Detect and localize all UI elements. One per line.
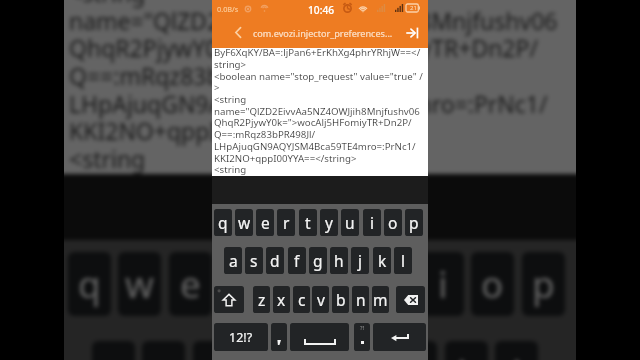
button[interactable]: q bbox=[68, 252, 111, 316]
button[interactable]: c bbox=[293, 286, 310, 313]
staticText: t bbox=[305, 212, 311, 233]
staticText: <string bbox=[69, 143, 146, 174]
button[interactable]: o bbox=[384, 209, 402, 236]
button[interactable]: y bbox=[320, 252, 363, 316]
button[interactable]: Shift bbox=[214, 286, 244, 313]
staticText: 0.0B/s bbox=[217, 4, 239, 14]
staticText: i bbox=[370, 212, 374, 233]
staticText: l bbox=[401, 250, 405, 271]
button[interactable]: l bbox=[495, 341, 538, 360]
staticText: x bbox=[277, 289, 286, 310]
staticText: k bbox=[457, 348, 477, 360]
button[interactable]: k bbox=[373, 247, 391, 274]
staticText: l bbox=[512, 348, 522, 360]
button[interactable]: Space bbox=[290, 323, 349, 351]
staticText: LHpAjuqGN9AQYJSM4Bca59TE4mro=:PrNc1/ bbox=[214, 140, 416, 153]
staticText: f bbox=[294, 250, 300, 271]
button[interactable]: p bbox=[522, 252, 565, 316]
button[interactable]: t bbox=[270, 252, 313, 316]
staticText: e bbox=[261, 212, 270, 233]
staticText: t bbox=[285, 259, 299, 309]
staticText: c bbox=[298, 289, 306, 310]
button[interactable]: Comma bbox=[271, 323, 287, 351]
button[interactable]: d bbox=[193, 341, 236, 360]
staticText: m bbox=[373, 289, 388, 310]
staticText: com.evozi.injector_preferences... bbox=[253, 27, 393, 39]
button[interactable]: w bbox=[118, 252, 161, 316]
staticText: d bbox=[270, 250, 280, 271]
button[interactable]: r bbox=[277, 209, 295, 236]
button[interactable]: u bbox=[341, 209, 359, 236]
staticText: Q==:mRqz83bPR498Jl/ bbox=[69, 60, 309, 91]
button[interactable]: Save bbox=[398, 17, 426, 48]
button[interactable]: x bbox=[273, 286, 290, 313]
staticText: ByF6XqKY/BA=:ljPan6+ErKhXg4phrYRhjW==</ bbox=[214, 48, 421, 59]
button[interactable]: n bbox=[352, 286, 369, 313]
staticText: i bbox=[438, 259, 448, 309]
staticText: <string bbox=[214, 163, 247, 176]
button[interactable]: t bbox=[299, 209, 317, 236]
button[interactable]: Back bbox=[222, 17, 254, 48]
button[interactable]: w bbox=[235, 209, 253, 236]
staticText: > bbox=[214, 81, 220, 94]
button[interactable]: z bbox=[253, 286, 270, 313]
staticText: d bbox=[203, 348, 226, 360]
staticText: p bbox=[532, 259, 555, 309]
staticText: 21 bbox=[410, 4, 417, 12]
button[interactable]: a bbox=[224, 247, 242, 274]
staticText: b bbox=[336, 289, 346, 310]
staticText: h bbox=[334, 250, 344, 271]
button[interactable]: com.evozi.injector_preferences... bbox=[253, 17, 398, 48]
staticText: g bbox=[313, 250, 323, 271]
button[interactable]: m bbox=[372, 286, 389, 313]
button[interactable]: l bbox=[394, 247, 412, 274]
staticText: q bbox=[78, 259, 101, 309]
button[interactable]: r bbox=[219, 252, 262, 316]
staticText: string> bbox=[214, 58, 247, 71]
button[interactable]: Delete bbox=[396, 286, 425, 313]
button[interactable]: j bbox=[351, 247, 369, 274]
button[interactable]: e bbox=[256, 209, 274, 236]
button[interactable]: q bbox=[214, 209, 232, 236]
staticText: g bbox=[304, 348, 327, 360]
button[interactable]: 12!? bbox=[214, 323, 268, 351]
staticText: name="QlZD2EivvAa5NZ4OWJjih8Mnjfushv06 bbox=[214, 105, 420, 118]
staticText: name="QlZD2EivvAa5NZ4OWJjih8Mnjfushv06 bbox=[69, 5, 558, 36]
button[interactable]: g bbox=[309, 247, 327, 274]
button[interactable]: o bbox=[471, 252, 514, 316]
staticText: s bbox=[250, 250, 258, 271]
staticText: y bbox=[332, 259, 351, 309]
staticText: u bbox=[345, 212, 355, 233]
staticText: <boolean name="stop_request" value="true… bbox=[214, 70, 423, 83]
staticText: Q==:mRqz83bPR498Jl/ bbox=[214, 128, 316, 141]
button[interactable]: f bbox=[243, 341, 286, 360]
staticText: KKI2NO+qppI00YYA==</string> bbox=[69, 115, 407, 146]
button[interactable]: i bbox=[363, 209, 381, 236]
button[interactable]: b bbox=[332, 286, 349, 313]
staticText: 10:46 bbox=[308, 3, 335, 17]
staticText: 12!? bbox=[229, 329, 253, 346]
button[interactable]: i bbox=[421, 252, 464, 316]
button[interactable]: j bbox=[394, 341, 437, 360]
button[interactable]: p bbox=[405, 209, 423, 236]
staticText: <string bbox=[69, 0, 146, 8]
button[interactable]: Period bbox=[354, 323, 370, 351]
button[interactable]: a bbox=[92, 341, 135, 360]
button[interactable]: Enter bbox=[373, 323, 426, 351]
button[interactable]: d bbox=[266, 247, 284, 274]
button[interactable]: s bbox=[142, 341, 185, 360]
button[interactable]: e bbox=[169, 252, 212, 316]
button[interactable]: u bbox=[370, 252, 413, 316]
staticText: r bbox=[283, 212, 290, 233]
staticText: k bbox=[378, 250, 387, 271]
button[interactable]: g bbox=[294, 341, 337, 360]
staticText: e bbox=[180, 259, 201, 309]
button[interactable]: s bbox=[245, 247, 263, 274]
button[interactable]: y bbox=[320, 209, 338, 236]
button[interactable]: v bbox=[312, 286, 329, 313]
button[interactable]: h bbox=[344, 341, 387, 360]
button[interactable]: k bbox=[445, 341, 488, 360]
button[interactable]: f bbox=[288, 247, 306, 274]
button[interactable]: h bbox=[330, 247, 348, 274]
